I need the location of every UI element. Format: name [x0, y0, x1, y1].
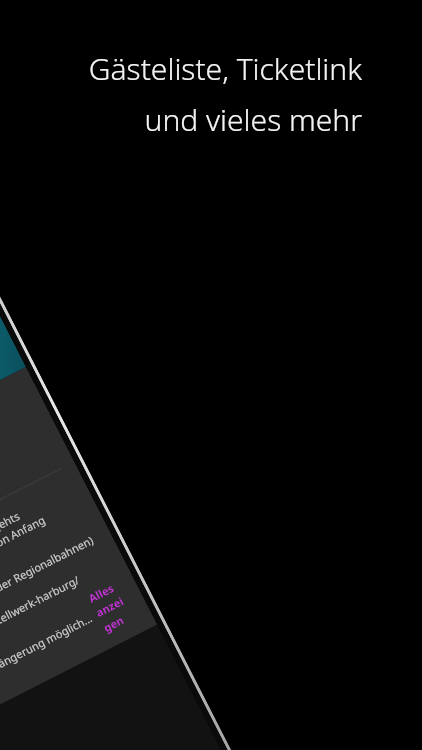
staticText: Alles anzeigen: [86, 576, 139, 636]
staticText: Einlass ab 16 Jahren, Verlängerung mögli…: [0, 610, 95, 729]
staticText: https://event/harder-world-stellwerk-har…: [0, 572, 82, 694]
staticText: und vieles mehr: [144, 99, 362, 140]
button[interactable]: Alles anzeigen: [86, 576, 139, 636]
staticText: Gästeliste, Ticketlink: [88, 48, 362, 89]
staticText: Zur Eröffnung am 22.4 im Stellwerk gehts: [0, 508, 23, 619]
staticText: Harburg Bahnhof, über Gleis 4 der Region…: [0, 532, 96, 668]
staticText: zum ersten mal pur Harder Styles von Anf…: [0, 512, 48, 632]
